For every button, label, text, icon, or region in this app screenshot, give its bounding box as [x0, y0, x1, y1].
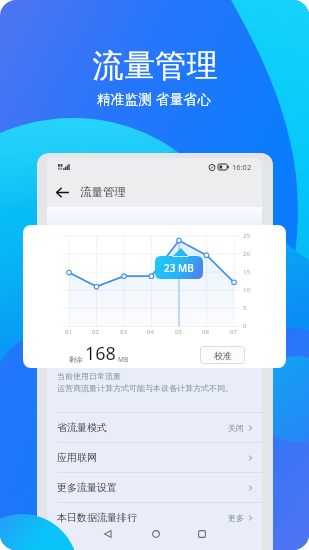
staticText: 05 [175, 328, 182, 336]
button[interactable]: 校准 [200, 346, 245, 364]
staticText: 剩余 [69, 355, 83, 364]
staticText: 流量管理 [80, 185, 126, 199]
button[interactable]: 更多流量设置 [47, 473, 262, 502]
button[interactable]: Back [52, 182, 72, 202]
staticText: 23 MB [164, 261, 194, 275]
staticText: 02 [92, 328, 99, 336]
staticText: 更多 [228, 513, 244, 523]
staticText: 15 [243, 268, 250, 276]
staticText: 07 [230, 328, 237, 336]
staticText: 0 [243, 322, 247, 330]
button[interactable]: Back [98, 525, 116, 543]
staticText: 关闭 [228, 423, 244, 433]
button[interactable]: Home [147, 525, 165, 543]
button[interactable]: Recents [193, 525, 211, 543]
staticText: 25 [243, 232, 250, 240]
staticText: 06 [202, 328, 209, 336]
staticText: 01 [65, 328, 72, 336]
button[interactable]: 应用联网 [47, 443, 262, 472]
staticText: 03 [120, 328, 127, 336]
staticText: 省流量模式 [57, 421, 107, 434]
staticText: 当前使用日常流量 [57, 371, 121, 381]
staticText: MB [118, 355, 129, 364]
staticText: 16:02 [232, 162, 252, 172]
button[interactable]: 本日数据流量排行 [47, 503, 262, 532]
staticText: 04 [147, 328, 154, 336]
button[interactable]: 省流量模式 [47, 413, 262, 442]
staticText: 流量管理 [92, 46, 218, 85]
staticText: 10 [243, 286, 250, 294]
staticText: 精准监测 省量省心 [97, 90, 212, 108]
staticText: 应用联网 [57, 451, 97, 464]
staticText: 168 [85, 341, 116, 366]
staticText: 5 [243, 304, 247, 312]
staticText: 校准 [214, 350, 232, 361]
staticText: 本日数据流量排行 [57, 511, 137, 524]
staticText: 运营商流量计算方式可能与本设备计算方式不同。 [57, 383, 233, 393]
staticText: 更多流量设置 [57, 481, 117, 494]
staticText: 20 [243, 250, 250, 258]
